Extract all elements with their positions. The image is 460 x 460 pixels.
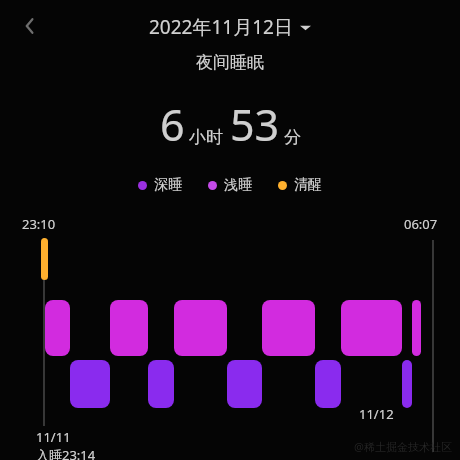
staticText: 11/12 (359, 405, 460, 423)
staticText: @稀土掘金技术社区 (354, 439, 452, 454)
staticText: 浅睡 (224, 176, 252, 194)
staticText: 23:10 (22, 215, 56, 233)
staticText: 6 (160, 95, 185, 154)
staticText: 夜间睡眠 (196, 52, 264, 73)
staticText: 小时 (189, 127, 223, 148)
staticText: 53 (230, 95, 280, 154)
staticText: 深睡 (154, 176, 182, 194)
staticText: 分 (284, 127, 301, 148)
button[interactable]: 浅睡 (206, 174, 254, 196)
button[interactable]: 2022年11月12日 (143, 12, 317, 42)
button[interactable]: 深睡 (136, 174, 184, 196)
staticText: 06:07 (404, 215, 438, 233)
staticText: 2022年11月12日 (149, 14, 293, 40)
staticText: 入睡23:14 (36, 446, 96, 460)
staticText: 11/11 (36, 428, 71, 446)
button[interactable]: Back (12, 8, 48, 44)
staticText: 清醒 (294, 176, 322, 194)
button[interactable]: 清醒 (276, 174, 324, 196)
